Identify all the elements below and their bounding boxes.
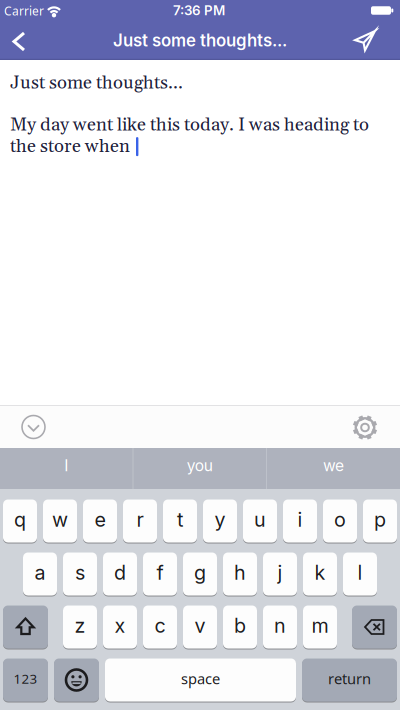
button[interactable]: s (63, 552, 97, 595)
button[interactable]: d (103, 552, 137, 595)
button[interactable]: e (83, 499, 117, 542)
staticText: c (154, 614, 165, 637)
staticText: Just some thoughts... (10, 71, 183, 95)
staticText: My day went like this today. I was headi… (10, 113, 369, 137)
button[interactable] (3, 605, 48, 648)
staticText: b (234, 614, 246, 637)
staticText: 123 (13, 670, 37, 687)
staticText: t (177, 508, 183, 531)
button[interactable] (348, 410, 382, 444)
button[interactable]: f (143, 552, 177, 595)
button[interactable]: we (267, 448, 400, 489)
staticText: e (94, 508, 105, 531)
button[interactable]: q (3, 499, 37, 542)
button[interactable]: a (23, 552, 57, 595)
button[interactable] (54, 658, 99, 701)
button[interactable]: 123 (3, 658, 48, 701)
button[interactable]: y (203, 499, 237, 542)
staticText: Carrier (4, 3, 44, 19)
staticText: z (74, 614, 85, 637)
button[interactable]: u (243, 499, 277, 542)
button[interactable]: o (323, 499, 357, 542)
staticText: g (194, 561, 206, 584)
staticText: 7:36 PM (173, 2, 225, 18)
button[interactable] (2, 22, 36, 60)
button[interactable]: j (263, 552, 297, 595)
button[interactable] (16, 410, 50, 444)
staticText: we (323, 456, 344, 475)
staticText: Just some thoughts... (113, 30, 287, 50)
staticText: I (64, 456, 68, 475)
staticText: k (314, 561, 325, 584)
button[interactable]: i (283, 499, 317, 542)
staticText: h (234, 561, 246, 584)
button[interactable]: r (123, 499, 157, 542)
staticText: n (274, 614, 286, 637)
button[interactable]: n (263, 605, 297, 648)
button[interactable]: w (43, 499, 77, 542)
staticText: w (52, 508, 68, 531)
staticText: space (181, 669, 220, 688)
button[interactable]: b (223, 605, 257, 648)
staticText: you (187, 456, 213, 475)
button[interactable]: m (303, 605, 337, 648)
button[interactable]: v (183, 605, 217, 648)
staticText: q (14, 508, 26, 531)
button[interactable]: t (163, 499, 197, 542)
staticText: the store when (10, 135, 130, 158)
button[interactable] (354, 30, 376, 52)
staticText: y (214, 508, 225, 531)
staticText: a (34, 561, 45, 584)
staticText: i (297, 508, 302, 531)
button[interactable]: space (105, 658, 296, 701)
button[interactable] (352, 605, 397, 648)
staticText: v (194, 614, 205, 637)
staticText: s (75, 561, 85, 584)
staticText: x (114, 614, 125, 637)
staticText: j (277, 561, 282, 584)
button[interactable]: c (143, 605, 177, 648)
button[interactable]: you (133, 448, 266, 489)
button[interactable]: x (103, 605, 137, 648)
staticText: l (357, 561, 362, 584)
button[interactable]: k (303, 552, 337, 595)
button[interactable]: h (223, 552, 257, 595)
staticText: r (136, 508, 143, 531)
button[interactable]: z (63, 605, 97, 648)
staticText: o (334, 508, 346, 531)
button[interactable]: l (343, 552, 377, 595)
button[interactable]: g (183, 552, 217, 595)
staticText: d (114, 561, 126, 584)
button[interactable]: return (302, 658, 397, 701)
staticText: f (156, 561, 163, 584)
button[interactable]: I (0, 448, 132, 489)
staticText: return (328, 669, 371, 688)
button[interactable]: p (363, 499, 397, 542)
staticText: m (311, 614, 328, 637)
staticText: p (374, 508, 386, 531)
staticText: u (254, 508, 266, 531)
